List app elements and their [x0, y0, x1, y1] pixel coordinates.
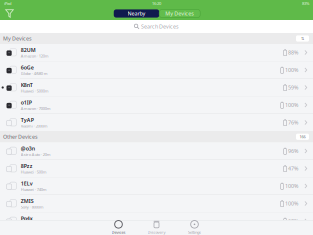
- staticText: Nearby: [127, 10, 145, 17]
- staticText: 166: [299, 134, 305, 139]
- staticText: @o3n: [21, 145, 35, 152]
- staticText: Amazon · 7000m: [21, 106, 51, 111]
- staticText: 100%: [285, 66, 298, 74]
- staticText: Sony · 8000m: [21, 204, 44, 210]
- staticText: Huawei · 500m: [21, 169, 47, 175]
- button[interactable]: Pp4x: [0, 212, 313, 229]
- button[interactable]: K8nT: [0, 79, 313, 96]
- staticText: Xiaomi · 2000m: [21, 123, 48, 129]
- staticText: o1IP: [21, 99, 32, 106]
- staticText: Huawei · 740m: [21, 187, 47, 192]
- staticText: TyAP: [21, 116, 34, 123]
- button[interactable]: Filter: [5, 9, 14, 18]
- button[interactable]: My Devices: [159, 9, 200, 18]
- staticText: Globe · 4/680 m: [21, 71, 48, 76]
- staticText: 1ELv: [21, 180, 33, 187]
- staticText: 82UM: [21, 46, 36, 53]
- staticText: 62%: [288, 217, 298, 225]
- staticText: 76%: [288, 119, 298, 126]
- button[interactable]: 1ELv: [0, 177, 313, 194]
- button[interactable]: ZMIS: [0, 195, 313, 212]
- button[interactable]: Nearby: [114, 9, 159, 18]
- staticText: Settings: [188, 230, 201, 235]
- button[interactable]: 6oGe: [0, 61, 313, 78]
- staticText: 16:20: [152, 1, 161, 6]
- staticText: Astro Auto · 20m: [21, 152, 51, 157]
- staticText: My Devices: [165, 10, 194, 17]
- button[interactable]: Settings: [175, 220, 213, 234]
- button[interactable]: TyAP: [0, 114, 313, 131]
- staticText: 59%: [288, 84, 298, 91]
- staticText: ZMIS: [21, 197, 34, 204]
- staticText: Devices: [111, 230, 125, 235]
- staticText: ⇅: [301, 36, 304, 41]
- staticText: 8Pzz: [21, 162, 33, 169]
- button[interactable]: 166: [296, 134, 309, 140]
- button[interactable]: Devices: [99, 220, 137, 234]
- staticText: 100%: [285, 200, 298, 207]
- staticText: Other Devices: [3, 133, 38, 140]
- staticText: Search Devices: [141, 23, 179, 30]
- staticText: 47%: [288, 165, 298, 172]
- button[interactable]: Discovery: [137, 220, 175, 234]
- staticText: My Devices: [3, 35, 32, 42]
- button[interactable]: 82UM: [0, 44, 313, 61]
- staticText: 6oGe: [21, 64, 34, 71]
- staticText: iPad: [4, 1, 11, 6]
- staticText: 88%: [288, 49, 298, 56]
- button[interactable]: 8Pzz: [0, 160, 313, 177]
- button[interactable]: o1IP: [0, 96, 313, 113]
- staticText: Discovery: [147, 230, 165, 235]
- button[interactable]: @o3n: [0, 142, 313, 159]
- staticText: Huawei · 5000m: [21, 88, 49, 94]
- staticText: K8nT: [21, 81, 33, 88]
- button[interactable]: ⇅: [296, 35, 309, 42]
- staticText: 96%: [288, 147, 298, 155]
- staticText: 100%: [285, 182, 298, 190]
- staticText: Amazon · 120m: [21, 53, 49, 59]
- staticText: Pp4x: [21, 215, 33, 222]
- staticText: 100%: [285, 101, 298, 109]
- staticText: 83%: [302, 1, 309, 6]
